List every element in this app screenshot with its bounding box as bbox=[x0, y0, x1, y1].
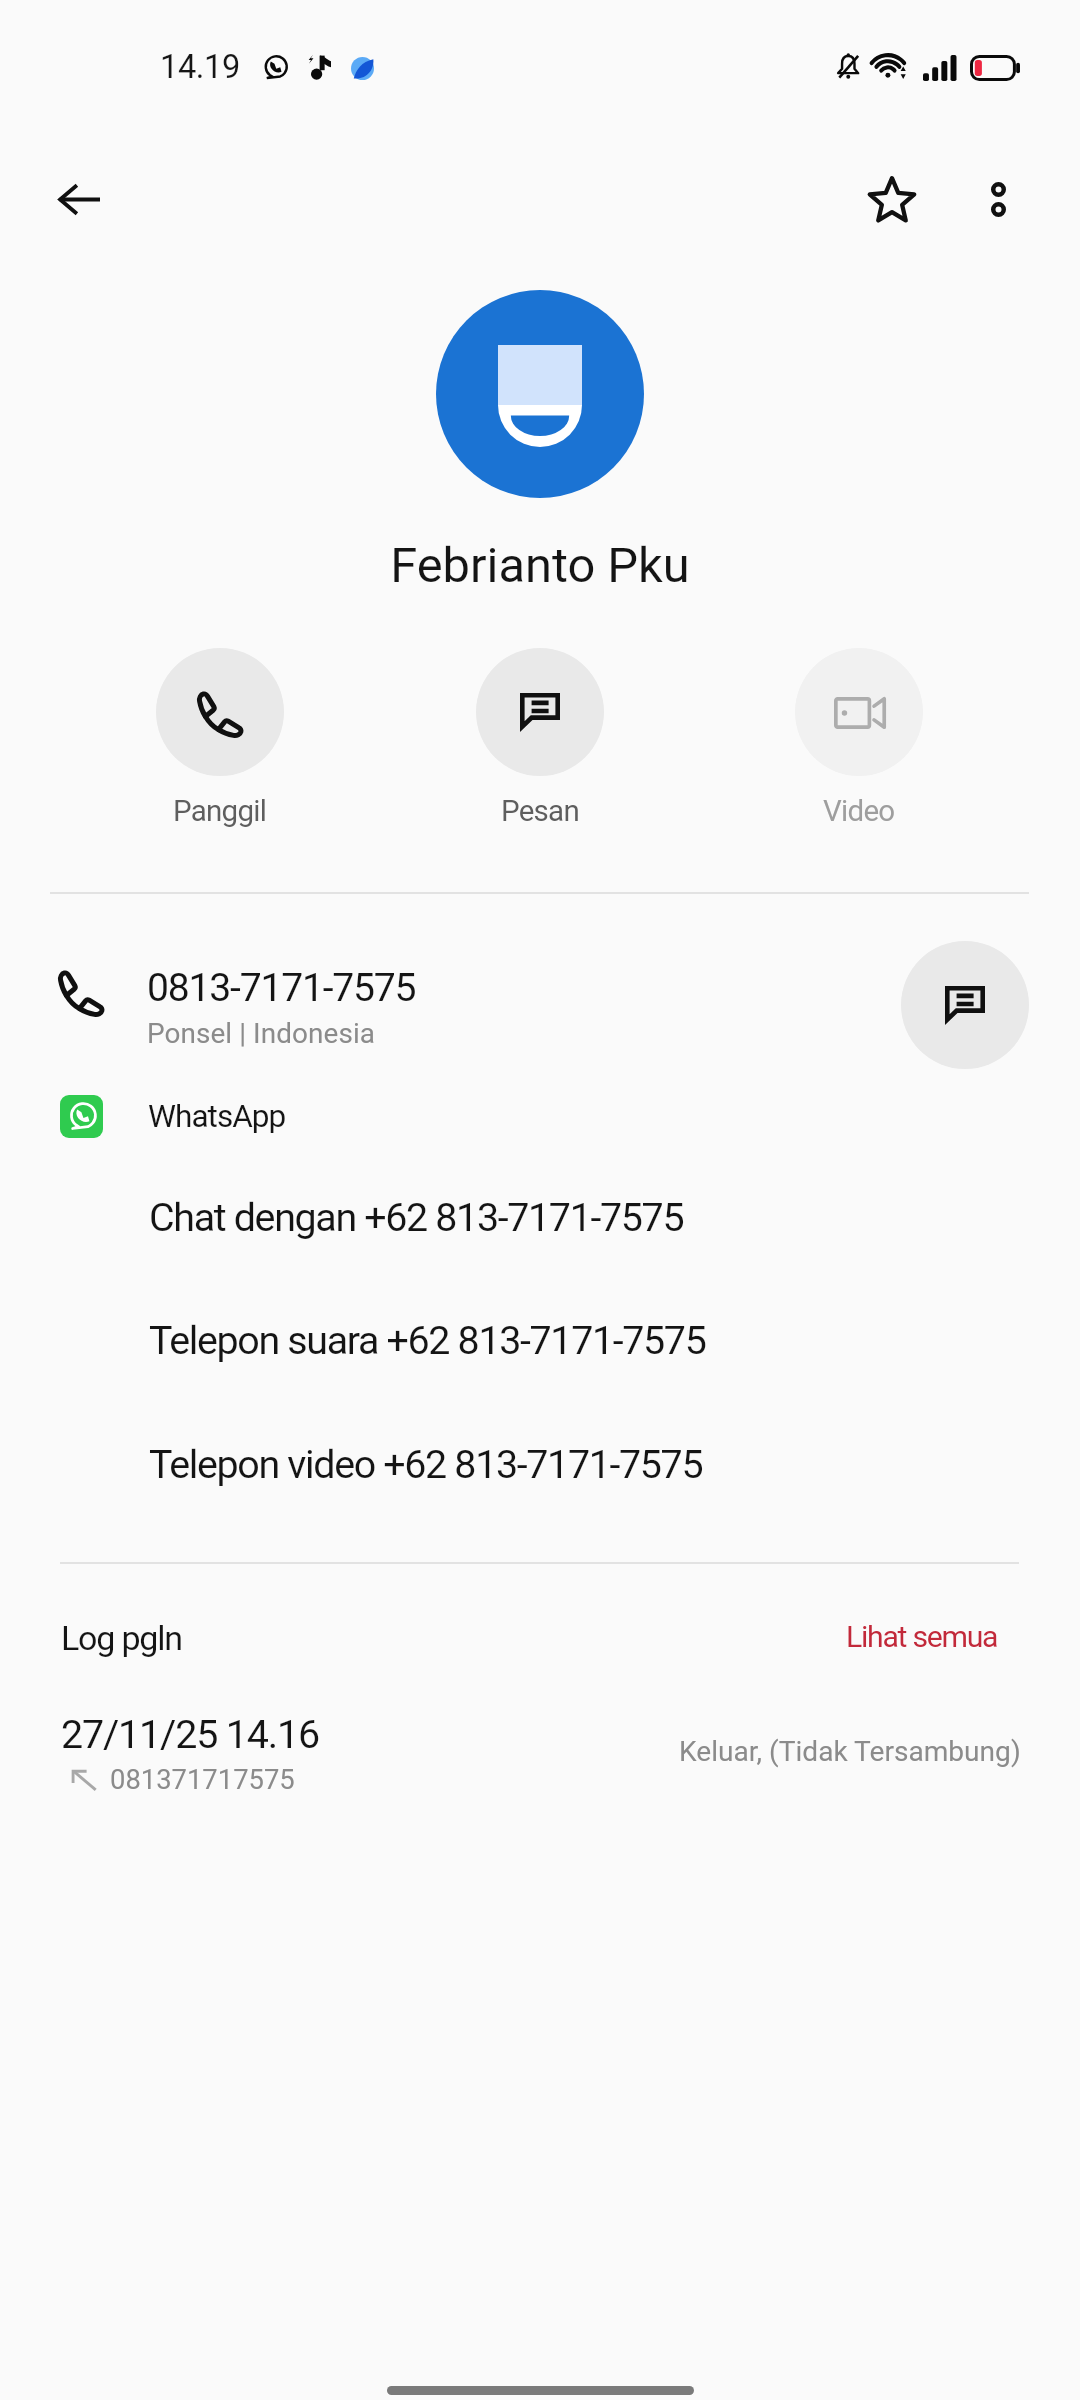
button[interactable]: Pesan bbox=[476, 648, 604, 829]
staticText: Telepon suara +62 813-7171-7575 bbox=[149, 1317, 706, 1363]
staticText: 081371717575 bbox=[110, 1764, 295, 1796]
button[interactable]: 27/11/25 14.16 bbox=[0, 1700, 1080, 1810]
button[interactable]: Back bbox=[31, 151, 127, 247]
staticText: Chat dengan +62 813-7171-7575 bbox=[149, 1194, 684, 1240]
button[interactable]: Telepon video +62 813-7171-7575 bbox=[0, 1419, 1080, 1499]
button[interactable]: Lihat semua bbox=[806, 1602, 998, 1670]
staticText: Lihat semua bbox=[846, 1619, 998, 1654]
staticText: Telepon video +62 813-7171-7575 bbox=[149, 1441, 703, 1487]
staticText: Panggil bbox=[173, 794, 267, 829]
staticText: Pesan bbox=[501, 794, 579, 829]
button[interactable]: Send message bbox=[901, 941, 1029, 1069]
staticText: 27/11/25 14.16 bbox=[61, 1711, 320, 1757]
button[interactable]: Chat dengan +62 813-7171-7575 bbox=[0, 1172, 1080, 1252]
button[interactable]: WhatsApp bbox=[0, 1085, 1080, 1149]
staticText: Log pgln bbox=[61, 1618, 182, 1658]
staticText: Febrianto Pku bbox=[390, 537, 690, 594]
staticText: Ponsel | Indonesia bbox=[147, 1017, 376, 1050]
button[interactable]: 0813-7171-7575 bbox=[0, 941, 1080, 1069]
button[interactable]: Panggil bbox=[156, 648, 284, 829]
staticText: 0813-7171-7575 bbox=[147, 965, 416, 1011]
staticText: WhatsApp bbox=[148, 1098, 286, 1135]
staticText: Video bbox=[823, 794, 895, 829]
button[interactable]: Contact photo bbox=[436, 290, 644, 498]
staticText: Keluar, (Tidak Tersambung) bbox=[679, 1735, 1021, 1768]
button[interactable]: Add to favorites bbox=[844, 151, 940, 247]
staticText: 14.19 bbox=[160, 48, 240, 86]
button[interactable]: More options bbox=[950, 151, 1046, 247]
button[interactable]: Video bbox=[795, 648, 923, 829]
button[interactable]: Telepon suara +62 813-7171-7575 bbox=[0, 1295, 1080, 1375]
